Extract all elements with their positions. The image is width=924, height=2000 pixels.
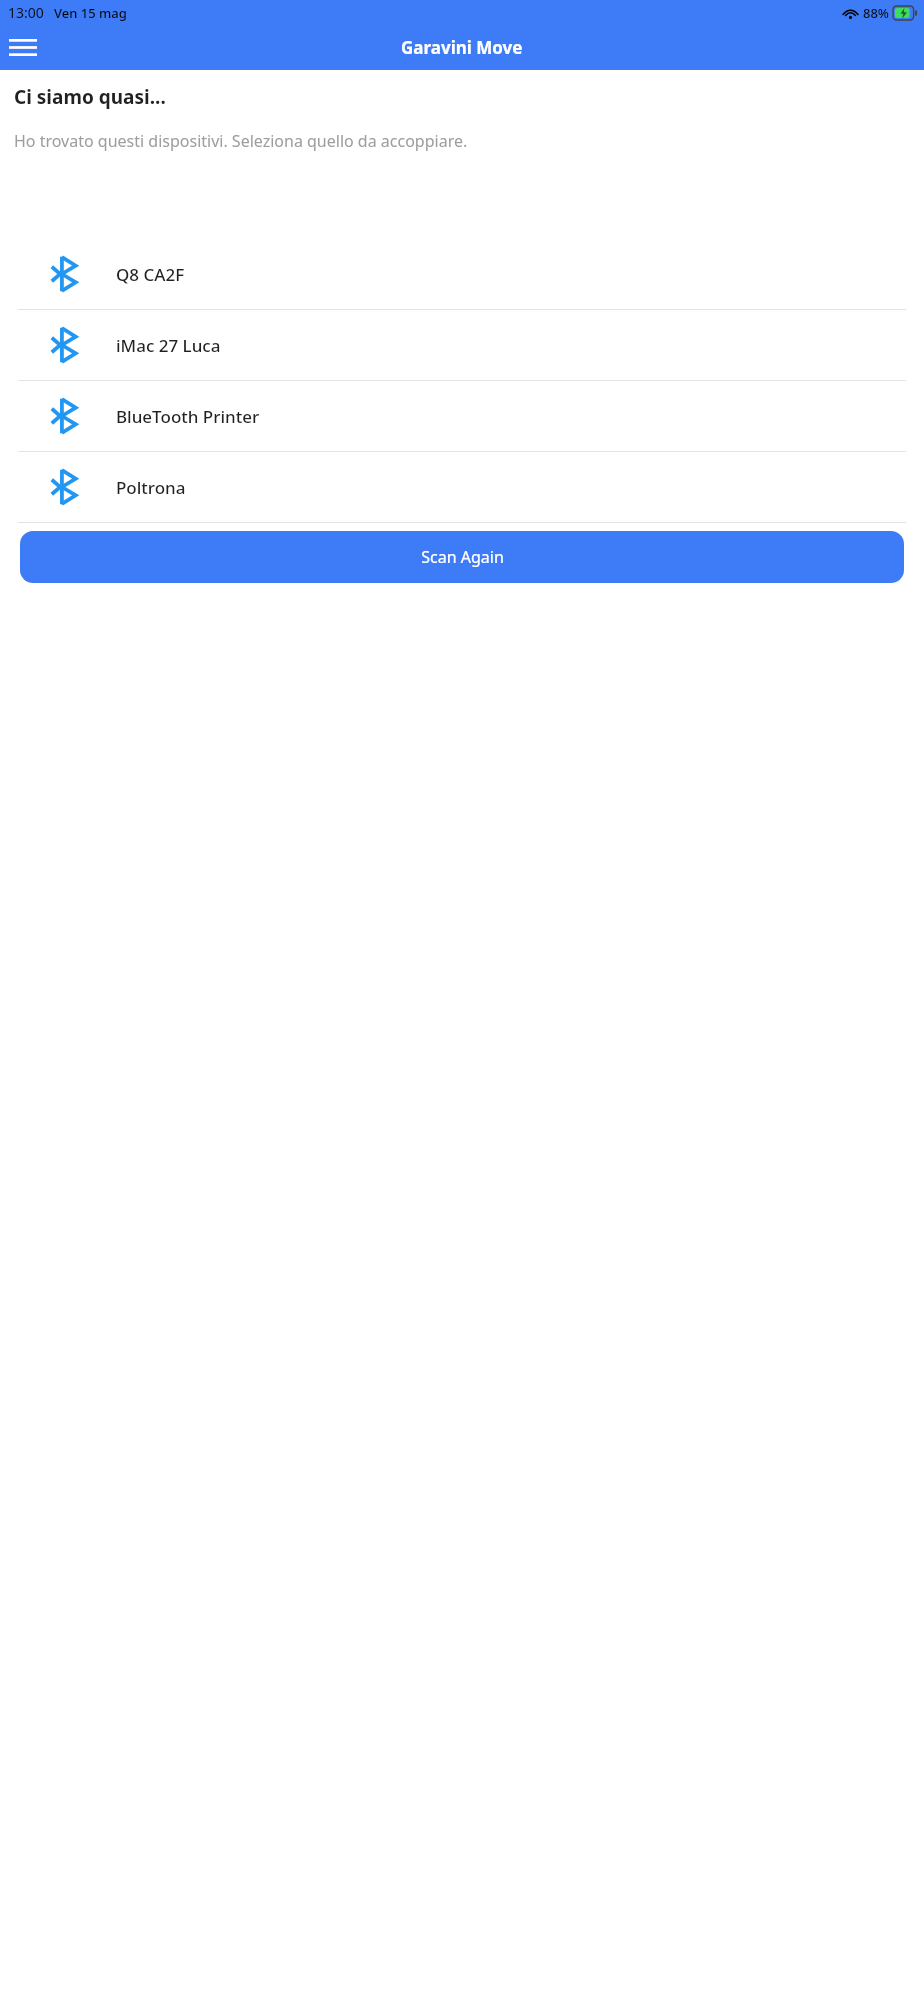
button[interactable]: iMac 27 Luca bbox=[0, 310, 924, 380]
staticText: Q8 CA2F bbox=[116, 263, 185, 286]
staticText: Poltrona bbox=[116, 476, 186, 499]
button[interactable]: Q8 CA2F bbox=[0, 239, 924, 309]
button[interactable]: BlueTooth Printer bbox=[0, 381, 924, 451]
button[interactable]: Poltrona bbox=[0, 452, 924, 522]
staticText: 13:00 bbox=[8, 3, 44, 22]
staticText: Scan Again bbox=[421, 546, 504, 568]
staticText: Ho trovato questi dispositivi. Seleziona… bbox=[14, 130, 468, 152]
staticText: BlueTooth Printer bbox=[116, 405, 260, 428]
staticText: Ven 15 mag bbox=[54, 4, 127, 22]
staticText: Garavini Move bbox=[401, 36, 523, 59]
button[interactable]: Scan Again bbox=[20, 531, 904, 583]
button[interactable]: Open navigation menu bbox=[0, 25, 46, 70]
staticText: 88% bbox=[863, 4, 889, 22]
staticText: iMac 27 Luca bbox=[116, 334, 221, 357]
staticText: Ci siamo quasi... bbox=[14, 84, 166, 110]
